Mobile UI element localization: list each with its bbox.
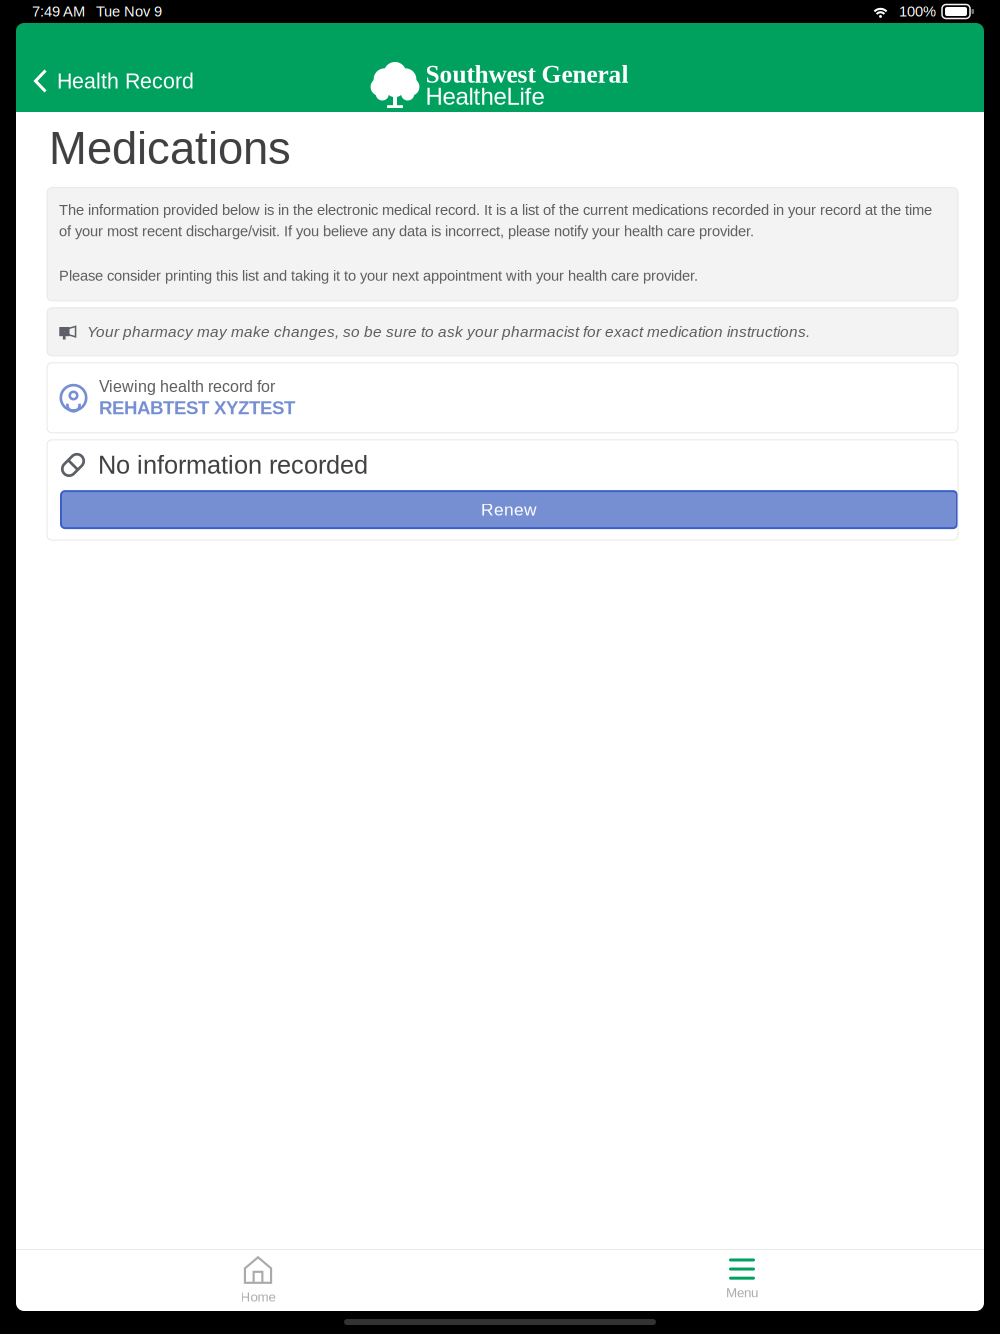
- staticText: HealtheLife: [425, 83, 544, 110]
- staticText: 100%: [899, 3, 936, 20]
- button[interactable]: Health Record: [16, 53, 194, 109]
- staticText: Renew: [481, 500, 537, 519]
- button[interactable]: Menu: [662, 1251, 822, 1309]
- staticText: Your pharmacy may make changes, so be su…: [87, 323, 810, 340]
- staticText: Home: [240, 1290, 275, 1304]
- staticText: Menu: [726, 1285, 758, 1300]
- button[interactable]: Renew: [61, 491, 957, 528]
- staticText: Southwest General: [425, 60, 628, 88]
- staticText: No information recorded: [98, 451, 368, 479]
- staticText: REHABTEST XYZTEST: [99, 397, 295, 418]
- staticText: Health Record: [57, 69, 194, 93]
- staticText: Medications: [49, 123, 291, 174]
- button[interactable]: Home: [178, 1251, 338, 1309]
- staticText: The information provided below is in the…: [59, 202, 932, 239]
- staticText: Please consider printing this list and t…: [59, 267, 698, 284]
- staticText: 7:49 AM: [32, 3, 85, 20]
- staticText: Tue Nov 9: [96, 3, 162, 20]
- staticText: Viewing health record for: [99, 377, 275, 395]
